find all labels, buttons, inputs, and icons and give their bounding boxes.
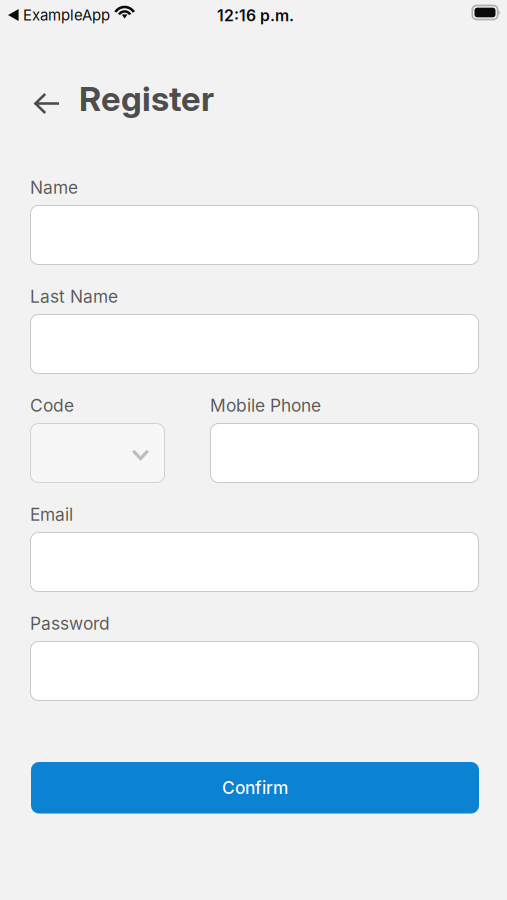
staticText: Email [30, 504, 73, 525]
button[interactable]: Email [30, 532, 478, 591]
button[interactable]: Mobile Phone [210, 423, 478, 482]
button[interactable]: Code [30, 423, 164, 482]
staticText: Name [30, 177, 78, 198]
staticText: ExampleApp [23, 6, 110, 24]
button[interactable]: Back [26, 82, 68, 125]
staticText: Register [79, 78, 214, 119]
staticText: Mobile Phone [210, 395, 321, 416]
staticText: 12:16 p.m. [217, 6, 294, 25]
button[interactable]: Back to ExampleApp [8, 6, 110, 24]
button[interactable]: Confirm [31, 762, 479, 813]
staticText: Last Name [30, 286, 118, 307]
staticText: Password [30, 613, 110, 634]
staticText: Confirm [222, 777, 288, 798]
button[interactable]: Last Name [30, 314, 478, 373]
staticText: Code [30, 395, 74, 416]
